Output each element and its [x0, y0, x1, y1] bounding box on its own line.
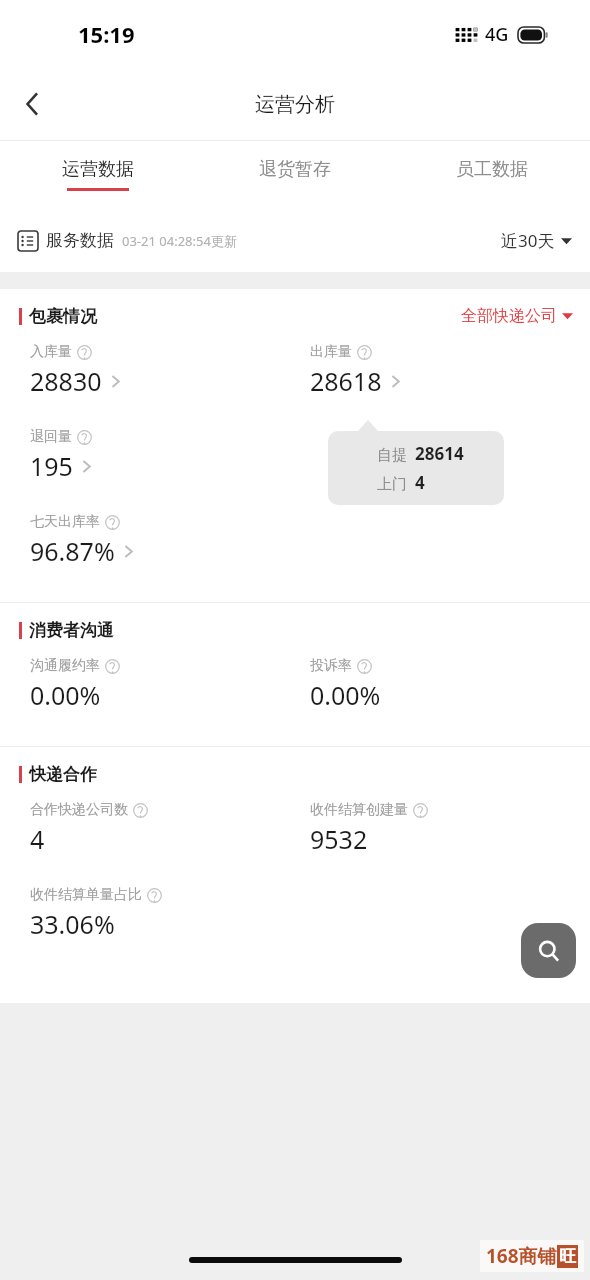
- staticText: 旺: [559, 1246, 576, 1267]
- staticText: 入库量: [30, 343, 72, 361]
- staticText: 员工数据: [456, 158, 528, 181]
- staticText: 4: [415, 471, 425, 494]
- staticText: 0.00%: [310, 678, 381, 712]
- staticText: 沟通履约率: [30, 657, 100, 675]
- staticText: 收件结算单量占比: [30, 886, 142, 904]
- button[interactable]: 搜索: [521, 923, 576, 978]
- button[interactable]: 七天出库率: [30, 513, 310, 568]
- staticText: 28830: [30, 364, 102, 398]
- staticText: 168商铺: [486, 1243, 557, 1269]
- staticText: 包裹情况: [29, 306, 97, 327]
- staticText: 0.00%: [30, 678, 101, 712]
- staticText: 近30天: [501, 229, 555, 252]
- button[interactable]: 全部快递公司: [461, 306, 573, 326]
- staticText: 合作快递公司数: [30, 801, 128, 819]
- staticText: 自提: [377, 446, 407, 465]
- staticText: 运营数据: [62, 158, 134, 181]
- staticText: 服务数据: [46, 230, 114, 251]
- staticText: 消费者沟通: [29, 620, 114, 641]
- staticText: 15:19: [78, 19, 135, 49]
- staticText: 28618: [310, 364, 382, 398]
- staticText: 运营分析: [255, 92, 335, 117]
- button[interactable]: 返回: [8, 80, 56, 128]
- staticText: 96.87%: [30, 534, 115, 568]
- button[interactable]: 退货暂存: [196, 141, 393, 208]
- staticText: 全部快递公司: [461, 306, 557, 326]
- staticText: 9532: [310, 822, 368, 856]
- staticText: 上门: [377, 475, 407, 494]
- staticText: 28614: [415, 442, 464, 465]
- button[interactable]: 运营数据: [0, 141, 196, 208]
- staticText: 出库量: [310, 343, 352, 361]
- staticText: 33.06%: [30, 907, 115, 941]
- staticText: 195: [30, 449, 73, 483]
- staticText: 投诉率: [310, 657, 352, 675]
- staticText: 快递合作: [29, 764, 97, 785]
- staticText: 收件结算创建量: [310, 801, 408, 819]
- button[interactable]: 入库量: [30, 343, 310, 398]
- staticText: 4: [30, 822, 45, 856]
- staticText: 退货暂存: [259, 158, 331, 181]
- button[interactable]: 近30天: [501, 229, 572, 252]
- staticText: 七天出库率: [30, 513, 100, 531]
- staticText: 03-21 04:28:54更新: [122, 232, 237, 250]
- staticText: 4G: [485, 22, 509, 47]
- button[interactable]: 员工数据: [393, 141, 590, 208]
- button[interactable]: 出库量: [310, 343, 590, 398]
- staticText: 退回量: [30, 428, 72, 446]
- button[interactable]: 退回量: [30, 428, 310, 483]
